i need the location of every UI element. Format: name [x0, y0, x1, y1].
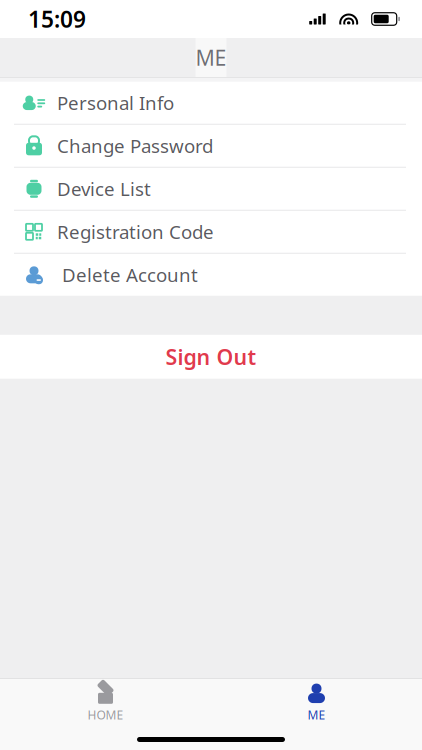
staticText: Sign Out	[165, 343, 256, 371]
staticText: HOME	[87, 707, 123, 723]
button[interactable]: Delete Account	[0, 254, 422, 296]
button[interactable]: Registration Code	[0, 211, 422, 253]
staticText: ME	[195, 43, 226, 72]
button[interactable]: Sign Out	[0, 335, 422, 379]
button[interactable]: ME	[211, 679, 422, 727]
button[interactable]: Personal Info	[0, 82, 422, 124]
staticText: Delete Account	[62, 262, 198, 287]
button[interactable]: HOME	[0, 679, 211, 727]
button[interactable]: Change Password	[0, 125, 422, 167]
staticText: 15:09	[28, 4, 86, 34]
staticText: Change Password	[57, 133, 213, 158]
staticText: ME	[307, 707, 325, 723]
staticText: Personal Info	[57, 90, 174, 115]
staticText: Device List	[57, 176, 151, 201]
staticText: Registration Code	[57, 219, 214, 244]
button[interactable]: Device List	[0, 168, 422, 210]
